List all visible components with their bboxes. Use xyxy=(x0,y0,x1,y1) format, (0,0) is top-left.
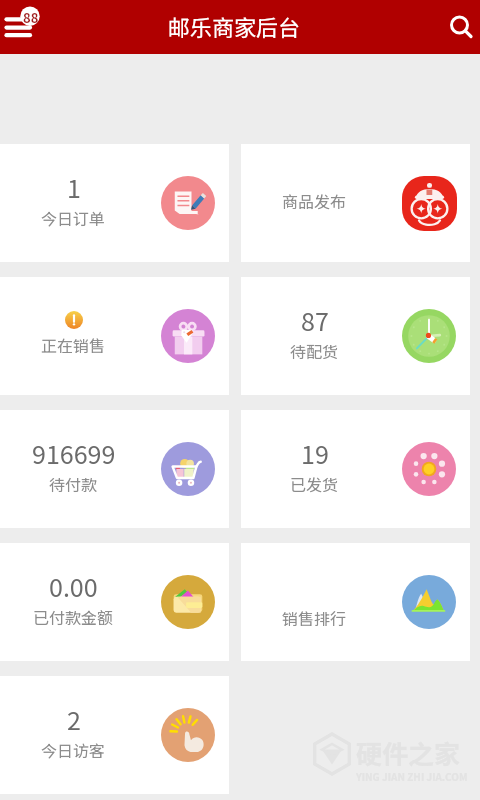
staticText: 正在销售 xyxy=(41,333,106,356)
button[interactable]: 销售排行 xyxy=(241,543,470,661)
button[interactable]: 2 xyxy=(0,676,229,794)
staticText: 硬件之家 xyxy=(356,734,461,772)
button[interactable]: Menu xyxy=(0,0,58,54)
staticText: 待付款 xyxy=(49,472,98,495)
staticText: 商品发布 xyxy=(282,189,347,212)
staticText: 已发货 xyxy=(290,472,339,495)
staticText: 邮乐商家后台 xyxy=(168,10,301,42)
button[interactable]: 1 xyxy=(0,144,229,262)
staticText: 87 xyxy=(301,302,329,338)
staticText: 待配货 xyxy=(290,339,339,362)
staticText: 1 xyxy=(67,169,81,205)
button[interactable]: Search xyxy=(426,0,480,54)
staticText: 0.00 xyxy=(49,568,98,604)
button[interactable]: 87 xyxy=(241,277,470,395)
button[interactable]: 正在销售 xyxy=(0,277,229,395)
staticText: 今日订单 xyxy=(41,206,106,229)
button[interactable]: 916699 xyxy=(0,410,229,528)
staticText: 88 xyxy=(23,8,39,27)
staticText: 销售排行 xyxy=(282,606,347,629)
staticText: YING JIAN ZHI JIA.COM xyxy=(356,769,468,781)
button[interactable]: 商品发布 xyxy=(241,144,470,262)
staticText: 今日访客 xyxy=(41,738,106,761)
staticText: 19 xyxy=(301,435,329,471)
button[interactable]: 0.00 xyxy=(0,543,229,661)
staticText: 已付款金额 xyxy=(33,605,114,628)
staticText: 916699 xyxy=(32,435,116,471)
button[interactable]: 19 xyxy=(241,410,470,528)
staticText: 2 xyxy=(67,701,81,737)
